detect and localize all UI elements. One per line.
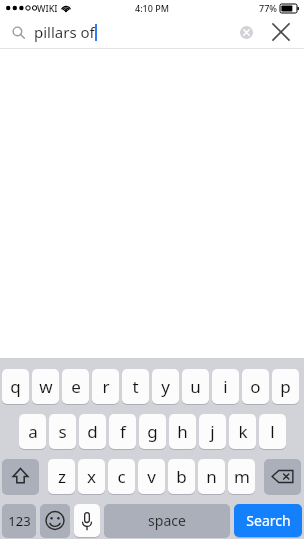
staticText: e	[71, 375, 81, 398]
staticText: t	[132, 375, 139, 398]
button[interactable]: Search	[234, 504, 302, 537]
button[interactable]: Shift	[2, 459, 39, 494]
button[interactable]: h	[169, 414, 196, 449]
staticText: h	[177, 420, 188, 443]
staticText: k	[238, 420, 248, 443]
button[interactable]: f	[109, 414, 136, 449]
button[interactable]: g	[139, 414, 166, 449]
button[interactable]: Emoji	[40, 504, 70, 537]
staticText: pillars of	[34, 22, 95, 42]
staticText: WIKI	[37, 2, 58, 14]
button[interactable]: s	[49, 414, 76, 449]
staticText: j	[210, 420, 215, 443]
button[interactable]: m	[228, 459, 255, 494]
staticText: u	[190, 375, 201, 398]
button[interactable]: r	[92, 369, 119, 404]
button[interactable]: c	[108, 459, 135, 494]
staticText: s	[58, 420, 67, 443]
button[interactable]: w	[32, 369, 59, 404]
staticText: 4:10 PM	[135, 2, 169, 14]
staticText: a	[28, 420, 38, 443]
staticText: l	[270, 420, 275, 443]
button[interactable]: u	[182, 369, 209, 404]
staticText: b	[176, 465, 187, 488]
button[interactable]: t	[122, 369, 149, 404]
button[interactable]: b	[168, 459, 195, 494]
staticText: v	[147, 465, 156, 488]
button[interactable]: v	[138, 459, 165, 494]
button[interactable]: Voice input	[74, 504, 100, 537]
staticText: p	[280, 375, 291, 398]
staticText: x	[87, 465, 96, 488]
button[interactable]: space	[104, 504, 230, 537]
button[interactable]: d	[79, 414, 106, 449]
staticText: g	[147, 420, 158, 443]
button[interactable]: z	[48, 459, 75, 494]
staticText: 123	[8, 512, 31, 530]
staticText: y	[161, 375, 170, 398]
staticText: o	[250, 375, 261, 398]
staticText: n	[206, 465, 217, 488]
staticText: q	[10, 375, 21, 398]
staticText: 77%	[259, 2, 277, 14]
button[interactable]: a	[19, 414, 46, 449]
button[interactable]: p	[272, 369, 299, 404]
button[interactable]: e	[62, 369, 89, 404]
staticText: m	[234, 465, 250, 488]
button[interactable]: Close search	[268, 19, 294, 45]
staticText: space	[148, 511, 186, 530]
button[interactable]: o	[242, 369, 269, 404]
staticText: r	[102, 375, 110, 398]
staticText: f	[120, 420, 126, 443]
button[interactable]: y	[152, 369, 179, 404]
button[interactable]: Backspace	[264, 459, 301, 494]
button[interactable]: q	[2, 369, 29, 404]
button[interactable]: k	[229, 414, 256, 449]
button[interactable]: i	[212, 369, 239, 404]
button[interactable]: n	[198, 459, 225, 494]
button[interactable]: 123	[2, 504, 36, 537]
button[interactable]: j	[199, 414, 226, 449]
staticText: z	[58, 465, 66, 488]
staticText: d	[87, 420, 98, 443]
button[interactable]: Clear text	[234, 20, 258, 44]
staticText: w	[39, 375, 53, 398]
button[interactable]: l	[259, 414, 286, 449]
staticText: i	[223, 375, 228, 398]
staticText: c	[117, 465, 126, 488]
button[interactable]: x	[78, 459, 105, 494]
staticText: Search	[246, 511, 291, 530]
